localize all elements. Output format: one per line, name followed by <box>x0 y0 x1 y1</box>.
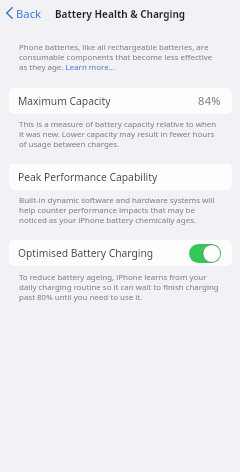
staticText: Optimised Battery Charging <box>18 246 154 260</box>
button[interactable]: Optimised Battery Charging <box>9 240 232 266</box>
button[interactable]: Back <box>3 4 45 22</box>
button[interactable]: Peak Performance Capability <box>9 164 232 190</box>
staticText: Back <box>16 6 42 21</box>
staticText: Phone batteries, like all rechargeable b… <box>19 42 240 73</box>
button[interactable]: Learn more <box>53 62 107 73</box>
staticText: To reduce battery ageing, iPhone learns … <box>19 272 240 303</box>
staticText: Battery Health & Charging <box>0 7 240 20</box>
staticText: This is a measure of battery capacity re… <box>19 119 240 150</box>
staticText: Maximum Capacity <box>18 94 111 108</box>
staticText: Peak Performance Capability <box>18 170 158 184</box>
staticText: 84% <box>198 93 221 108</box>
staticText: Built-in dynamic software and hardware s… <box>19 195 240 226</box>
button[interactable]: Maximum Capacity <box>9 88 232 114</box>
button[interactable]: Optimised Battery Charging <box>189 244 221 263</box>
